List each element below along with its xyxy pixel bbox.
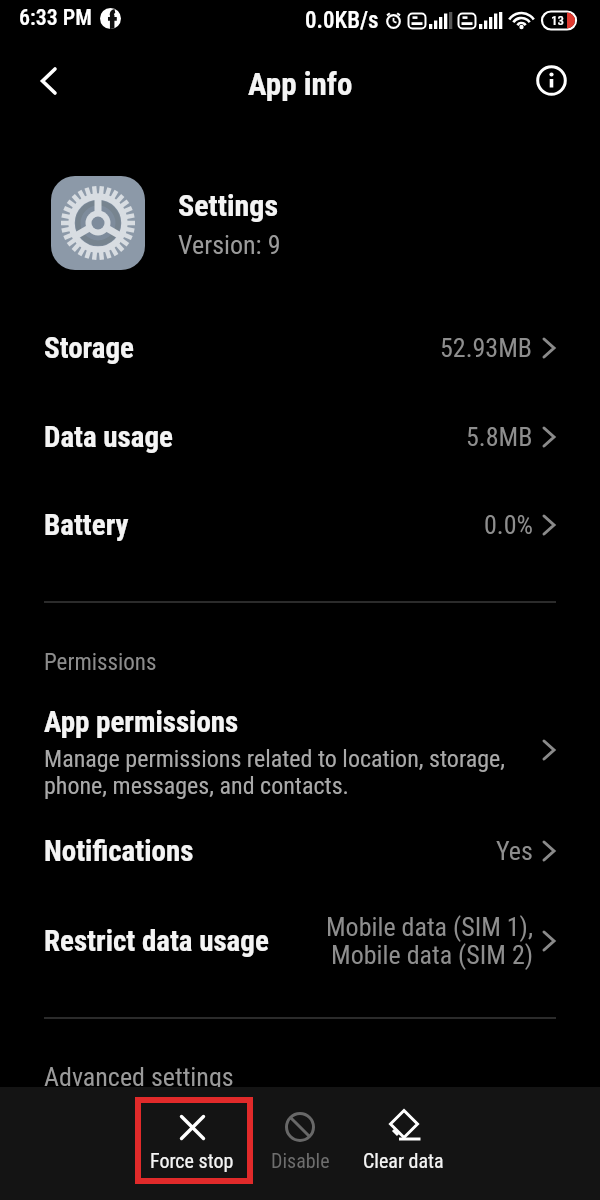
staticText: App info — [248, 66, 353, 102]
button[interactable] — [528, 57, 574, 103]
staticText: Clear data — [363, 1149, 444, 1172]
staticText: Disable — [271, 1149, 330, 1172]
button[interactable]: Force stop — [132, 1097, 252, 1187]
staticText: Manage permissions related to location, … — [44, 745, 506, 800]
button[interactable]: Restrict data usage — [0, 896, 600, 985]
staticText: Restrict data usage — [44, 924, 269, 958]
staticText: Advanced settings — [44, 1062, 234, 1092]
staticText: 13 — [551, 13, 565, 28]
staticText: Notifications — [44, 834, 194, 868]
staticText: Version: 9 — [178, 230, 281, 260]
button[interactable]: Notifications — [0, 807, 600, 895]
staticText: Mobile data (SIM 1), Mobile data (SIM 2) — [325, 912, 533, 970]
staticText: App permissions — [44, 705, 239, 739]
button[interactable]: Disable — [240, 1097, 360, 1187]
staticText: Data usage — [44, 420, 173, 454]
staticText: Settings — [178, 188, 279, 223]
button[interactable] — [27, 59, 71, 103]
staticText: 6:33 PM — [19, 5, 92, 31]
staticText: 0.0KB/s — [305, 7, 379, 34]
button[interactable]: Clear data — [343, 1097, 463, 1187]
staticText: 52.93MB — [440, 333, 533, 363]
staticText: Force stop — [150, 1149, 234, 1172]
button[interactable]: Battery — [0, 481, 600, 569]
staticText: 5.8MB — [466, 422, 533, 452]
button[interactable]: Data usage — [0, 392, 600, 481]
staticText: 0.0% — [484, 510, 533, 540]
staticText: Permissions — [44, 649, 157, 676]
staticText: Storage — [44, 331, 134, 365]
staticText: Yes — [496, 836, 533, 866]
button[interactable]: Storage — [0, 304, 600, 392]
staticText: Battery — [44, 508, 129, 542]
button[interactable]: App permissions — [0, 698, 600, 802]
